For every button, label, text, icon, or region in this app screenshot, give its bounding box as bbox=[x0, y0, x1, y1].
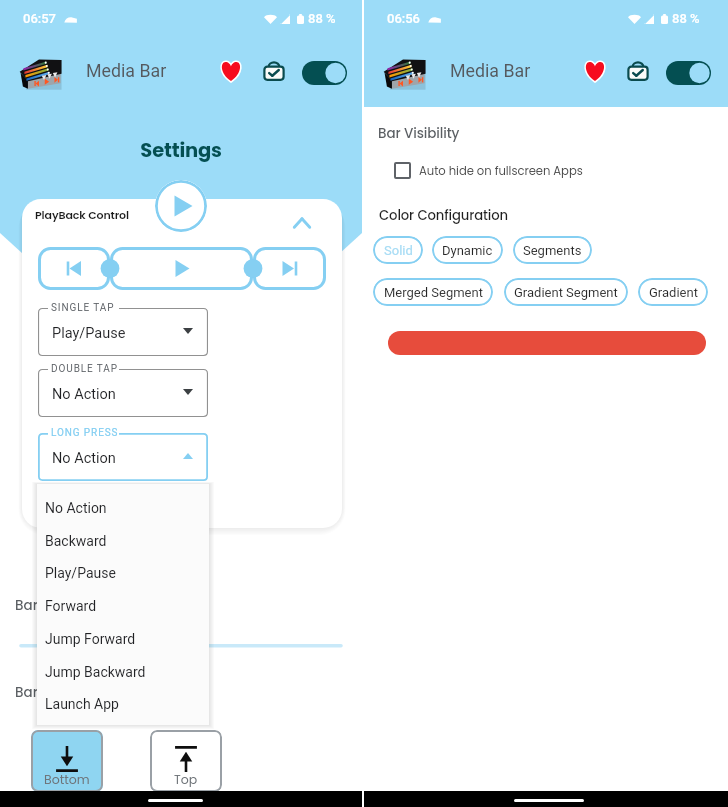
button[interactable]: Jump Forward bbox=[37, 622, 209, 655]
staticText: Bar Visibility bbox=[378, 124, 460, 143]
staticText: 88 % bbox=[672, 11, 700, 26]
button[interactable]: Forward bbox=[37, 589, 209, 622]
staticText: Media Bar bbox=[86, 60, 167, 81]
button[interactable]: SINGLE TAP bbox=[38, 308, 208, 356]
staticText: Forward bbox=[45, 598, 97, 614]
button[interactable]: Jump Backward bbox=[37, 655, 209, 688]
staticText: LONG PRESS bbox=[51, 427, 119, 439]
staticText: 06:56 bbox=[387, 11, 421, 26]
button[interactable]: LONG PRESS bbox=[38, 433, 208, 481]
button[interactable]: Enable media bar bbox=[302, 61, 347, 85]
button[interactable]: Dynamic bbox=[432, 236, 503, 264]
staticText: Merged Segment bbox=[384, 285, 483, 300]
staticText: Solid bbox=[384, 243, 413, 258]
staticText: Bar Height bbox=[15, 683, 86, 702]
button[interactable]: Gradient bbox=[638, 278, 708, 306]
button[interactable]: No Action bbox=[37, 491, 209, 524]
staticText: Jump Forward bbox=[45, 631, 136, 647]
staticText: Launch App bbox=[45, 696, 119, 712]
staticText: SINGLE TAP bbox=[51, 302, 115, 314]
button[interactable]: Favorite bbox=[219, 59, 243, 83]
staticText: Dynamic bbox=[442, 243, 493, 258]
staticText: No Action bbox=[45, 500, 107, 516]
button[interactable]: Store bbox=[626, 58, 650, 82]
button[interactable]: Store bbox=[262, 58, 286, 82]
staticText: No Action bbox=[52, 386, 116, 403]
staticText: DOUBLE TAP bbox=[51, 363, 118, 375]
staticText: Color Configuration bbox=[379, 206, 508, 224]
staticText: Play/Pause bbox=[52, 325, 126, 342]
button[interactable]: Favorite bbox=[583, 59, 607, 83]
staticText: Gradient Segment bbox=[514, 285, 618, 300]
button[interactable]: Next bbox=[253, 247, 326, 290]
staticText: Bar Color bbox=[15, 596, 78, 615]
button[interactable]: DOUBLE TAP bbox=[38, 369, 208, 417]
staticText: Gradient bbox=[649, 285, 698, 300]
staticText: PlayBack Control bbox=[35, 207, 129, 222]
staticText: 88 % bbox=[308, 11, 336, 26]
staticText: Segments bbox=[523, 243, 582, 258]
staticText: No Action bbox=[52, 450, 116, 467]
button[interactable]: Enable media bar bbox=[666, 61, 711, 85]
staticText: Jump Backward bbox=[45, 664, 146, 680]
button[interactable]: Play/Pause bbox=[37, 556, 209, 589]
staticText: Play/Pause bbox=[45, 565, 116, 581]
staticText: Top bbox=[174, 771, 198, 788]
button[interactable]: Bar colour preview bbox=[388, 331, 706, 355]
button[interactable]: Gradient Segment bbox=[504, 278, 628, 306]
button[interactable]: Solid bbox=[373, 236, 423, 264]
button[interactable]: Play bbox=[155, 180, 207, 232]
button[interactable]: Merged Segment bbox=[373, 278, 493, 306]
button[interactable]: Bottom bbox=[31, 730, 103, 792]
button[interactable]: Segments bbox=[513, 236, 592, 264]
staticText: Media Bar bbox=[450, 60, 531, 81]
staticText: Auto hide on fullscreen Apps bbox=[419, 163, 583, 179]
button[interactable]: Collapse bbox=[284, 205, 320, 241]
staticText: Bottom bbox=[44, 771, 90, 788]
button[interactable]: Auto hide on fullscreen Apps bbox=[394, 162, 583, 179]
staticText: Backward bbox=[45, 533, 107, 549]
staticText: Settings bbox=[0, 137, 362, 164]
staticText: 06:57 bbox=[23, 11, 57, 26]
button[interactable]: Play / pause bbox=[110, 247, 253, 290]
button[interactable]: Launch App bbox=[37, 687, 209, 720]
button[interactable]: Top bbox=[150, 730, 222, 792]
button[interactable]: Previous bbox=[38, 247, 110, 290]
button[interactable]: Backward bbox=[37, 524, 209, 557]
